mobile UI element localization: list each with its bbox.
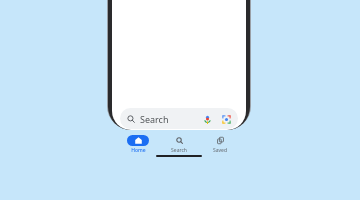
- button[interactable]: Saved: [201, 135, 239, 154]
- staticText: Search: [171, 147, 187, 154]
- button[interactable]: Voice search: [201, 113, 213, 125]
- button[interactable]: Search: [120, 108, 238, 129]
- staticText: Saved: [213, 147, 227, 154]
- staticText: Home: [131, 147, 146, 154]
- button[interactable]: Home: [119, 135, 157, 154]
- button[interactable]: Google Lens: [220, 113, 232, 125]
- staticText: Search: [140, 113, 169, 125]
- button[interactable]: Search: [160, 135, 198, 154]
